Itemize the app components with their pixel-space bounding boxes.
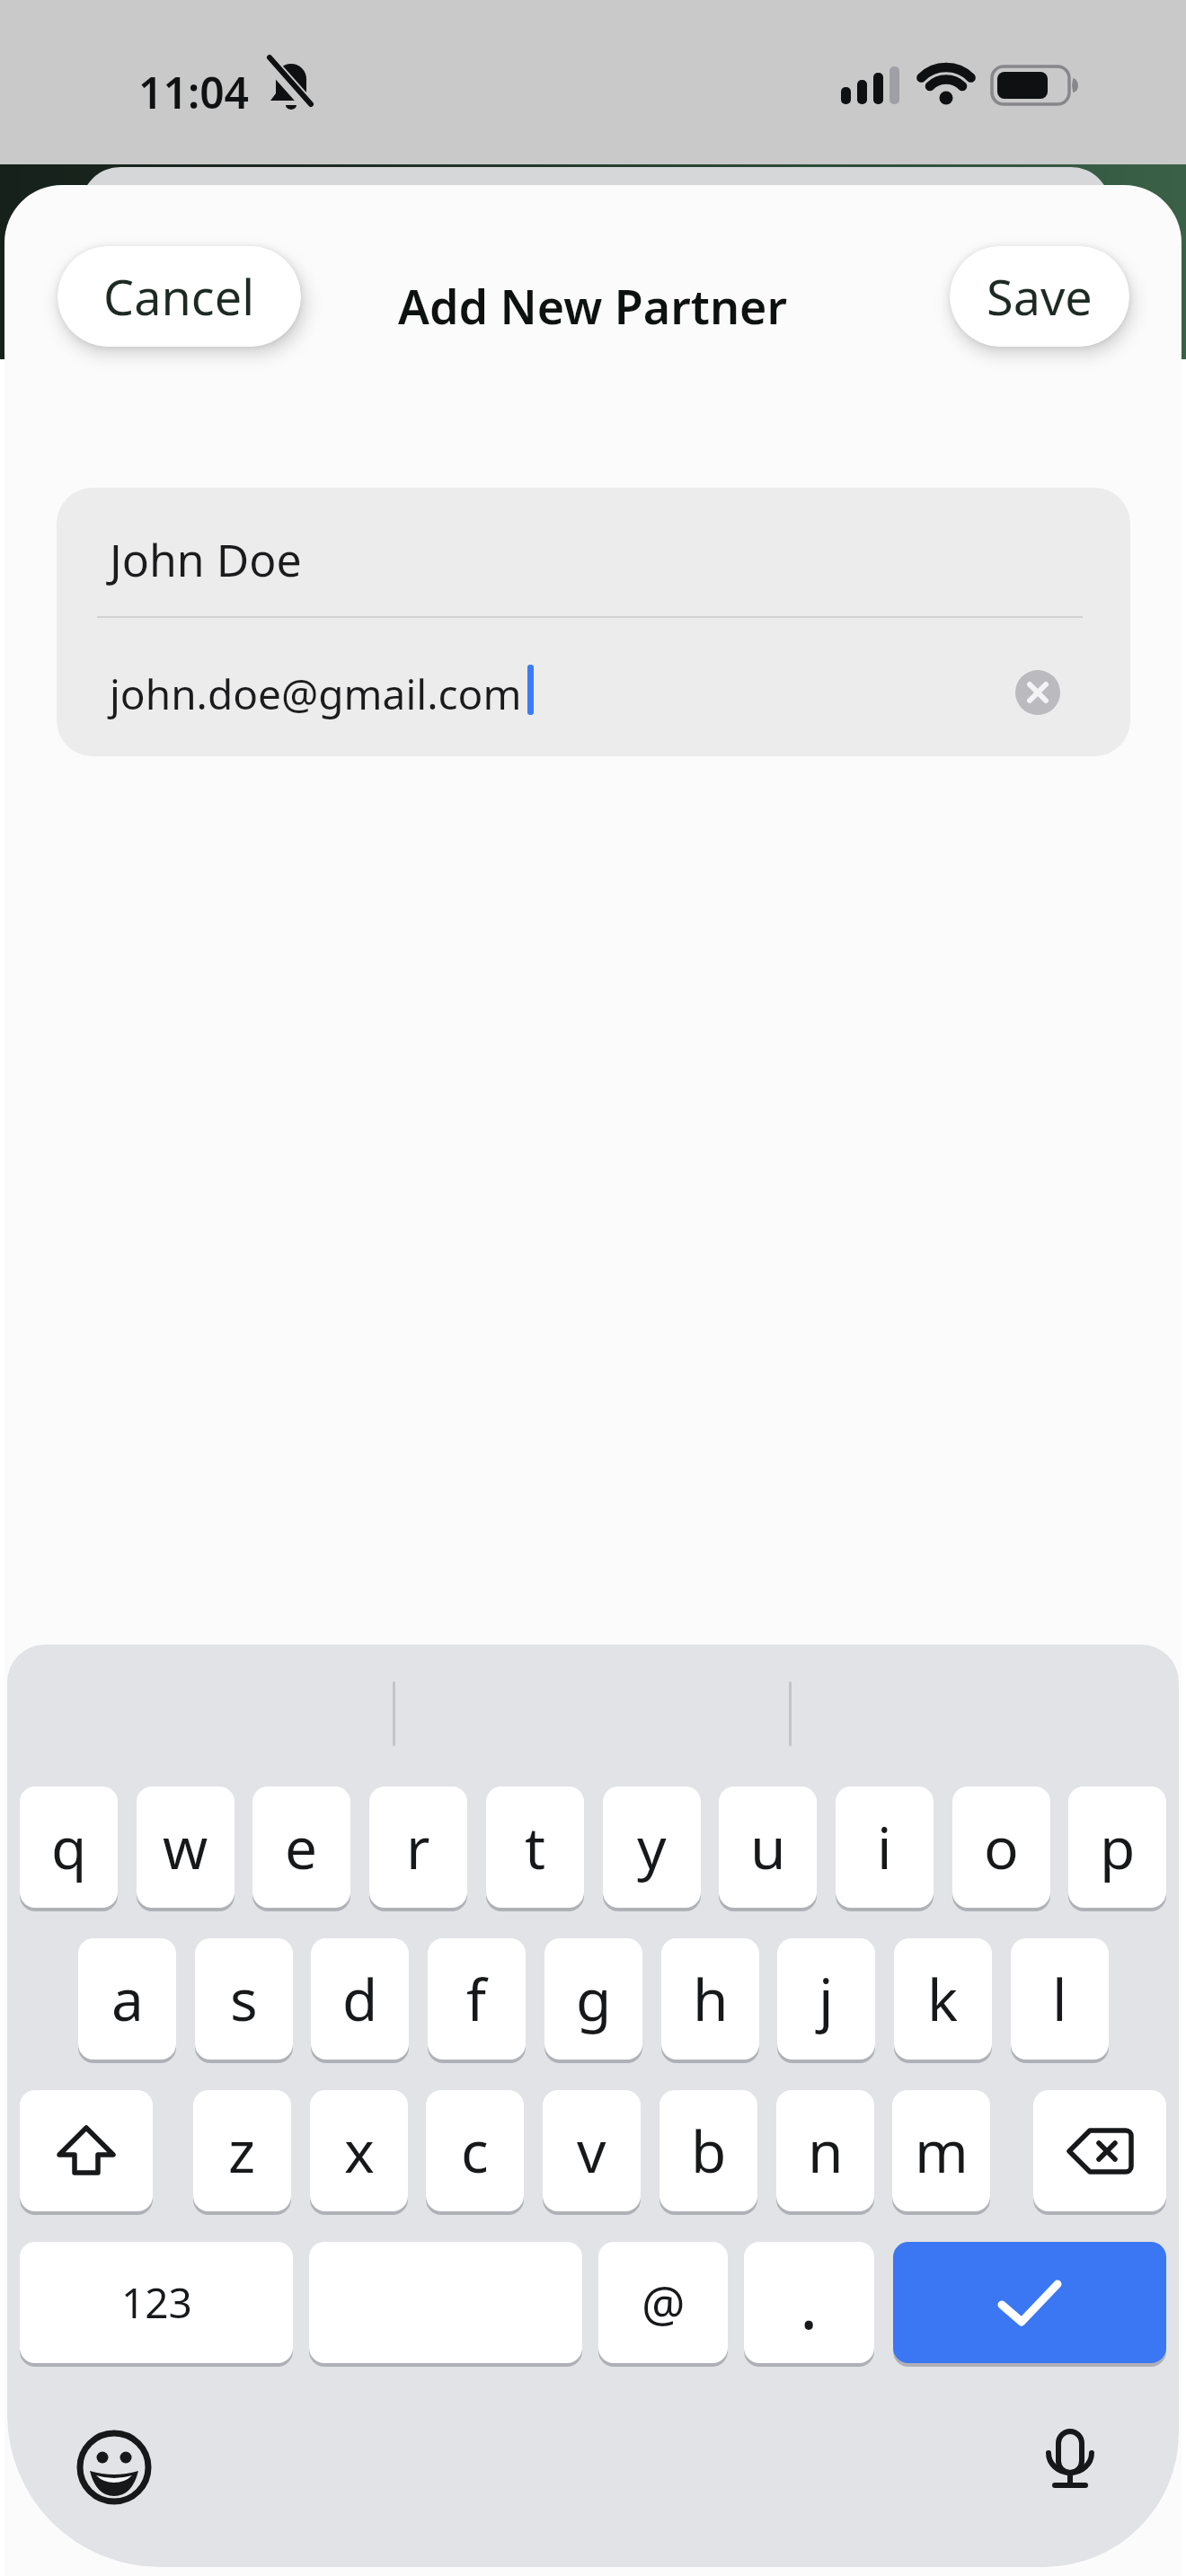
staticText: t (525, 1808, 546, 1886)
button[interactable]: f (428, 1938, 526, 2060)
staticText: d (342, 1960, 378, 2038)
button[interactable]: h (661, 1938, 759, 2060)
staticText: p (1100, 1808, 1136, 1886)
staticText: l (1052, 1960, 1067, 2038)
staticText: z (228, 2112, 256, 2190)
button[interactable]: b (659, 2090, 757, 2211)
button[interactable]: s (195, 1938, 293, 2060)
staticText: n (808, 2112, 844, 2190)
staticText: k (927, 1960, 959, 2038)
button[interactable]: c (426, 2090, 524, 2211)
staticText: m (915, 2112, 969, 2190)
button[interactable]: m (892, 2090, 990, 2211)
staticText: @ (642, 2270, 686, 2336)
staticText: w (163, 1808, 208, 1886)
button[interactable]: r (369, 1786, 467, 1908)
button[interactable] (57, 488, 1130, 617)
staticText: 11:04 (138, 63, 250, 121)
staticText: u (750, 1808, 786, 1886)
button[interactable]: z (193, 2090, 291, 2211)
button[interactable] (1033, 2090, 1166, 2211)
staticText: b (691, 2112, 727, 2190)
button[interactable]: p (1068, 1786, 1166, 1908)
staticText: john.doe@gmail.com (110, 666, 522, 722)
staticText: Cancel (103, 263, 255, 330)
button[interactable]: w (137, 1786, 235, 1908)
button[interactable]: t (486, 1786, 584, 1908)
button[interactable]: g (544, 1938, 642, 2060)
staticText: s (230, 1960, 258, 2038)
staticText: i (877, 1808, 892, 1886)
button[interactable]: q (20, 1786, 118, 1908)
button[interactable]: u (719, 1786, 817, 1908)
staticText: Add New Partner (398, 274, 788, 338)
button[interactable]: x (310, 2090, 408, 2211)
staticText: v (577, 2112, 606, 2190)
button[interactable] (73, 2426, 155, 2509)
button[interactable]: l (1011, 1938, 1109, 2060)
button[interactable] (1011, 666, 1065, 719)
button[interactable]: Cancel (58, 246, 301, 347)
staticText: x (344, 2112, 375, 2190)
staticText: Save (987, 263, 1093, 330)
button[interactable]: n (776, 2090, 874, 2211)
button[interactable]: y (603, 1786, 701, 1908)
staticText: o (984, 1808, 1019, 1886)
staticText: John Doe (110, 529, 302, 590)
staticText: q (51, 1808, 87, 1886)
button[interactable] (1029, 2422, 1111, 2509)
button[interactable]: i (836, 1786, 934, 1908)
button[interactable]: 123 (20, 2242, 293, 2363)
button[interactable] (20, 2090, 153, 2211)
button[interactable] (309, 2242, 582, 2363)
staticText: 123 (121, 2274, 192, 2331)
staticText: c (461, 2112, 489, 2190)
button[interactable]: d (311, 1938, 409, 2060)
staticText: a (111, 1960, 144, 2038)
staticText: g (576, 1960, 612, 2038)
button[interactable]: . (744, 2242, 874, 2363)
staticText: f (466, 1960, 487, 2038)
button[interactable] (893, 2242, 1166, 2363)
button[interactable]: a (78, 1938, 176, 2060)
button[interactable]: Save (950, 246, 1129, 347)
staticText: r (406, 1808, 430, 1886)
staticText: e (285, 1808, 318, 1886)
button[interactable]: j (777, 1938, 875, 2060)
staticText: . (800, 2256, 819, 2350)
button[interactable]: e (252, 1786, 350, 1908)
staticText: h (693, 1960, 729, 2038)
button[interactable]: o (952, 1786, 1050, 1908)
button[interactable] (57, 619, 1130, 756)
staticText: y (637, 1808, 667, 1886)
button[interactable]: @ (598, 2242, 728, 2363)
staticText: j (819, 1960, 834, 2038)
button[interactable]: v (543, 2090, 641, 2211)
button[interactable]: k (894, 1938, 992, 2060)
